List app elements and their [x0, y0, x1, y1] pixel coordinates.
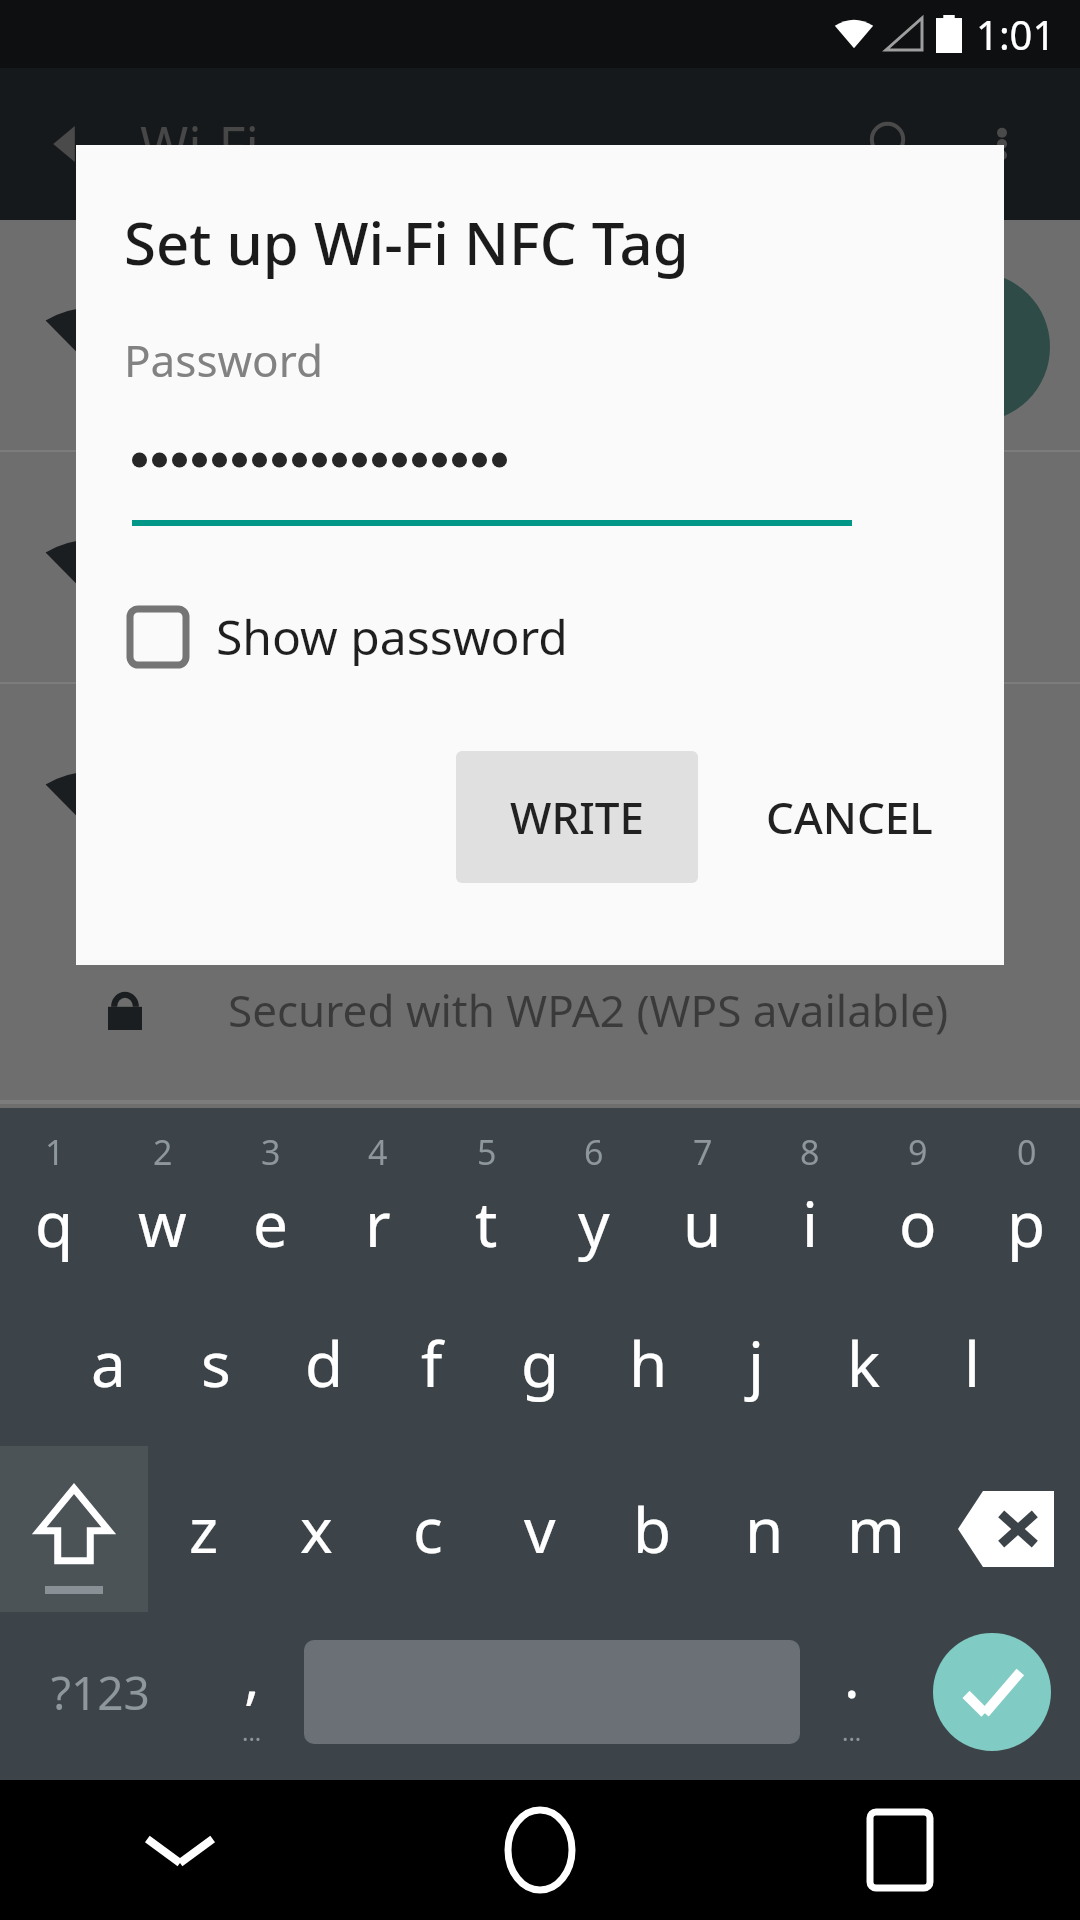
button[interactable]: x	[260, 1446, 372, 1612]
button[interactable]: Back	[40, 114, 100, 174]
staticText: o	[899, 1181, 937, 1265]
button[interactable]: Recents	[720, 1780, 1080, 1920]
button[interactable]: c	[372, 1446, 484, 1612]
staticText: 2	[153, 1129, 173, 1175]
button[interactable]: h	[594, 1280, 702, 1446]
button[interactable]: ,	[200, 1612, 304, 1772]
staticText: k	[847, 1321, 881, 1405]
staticText: 1:01	[976, 7, 1056, 61]
staticText: 8	[800, 1129, 820, 1175]
staticText: ,	[244, 1636, 260, 1715]
staticText: 5	[477, 1129, 497, 1175]
button[interactable]: WRITE	[456, 751, 698, 883]
staticText: Secured with WPA2 (WPS available)	[228, 980, 949, 1040]
staticText: q	[35, 1181, 74, 1265]
staticText: f	[421, 1321, 443, 1405]
button[interactable]: 3	[216, 1114, 324, 1280]
button[interactable]: d	[270, 1280, 378, 1446]
button[interactable]: 5	[432, 1114, 540, 1280]
staticText: v	[524, 1487, 556, 1571]
staticText: CANCEL	[766, 787, 933, 847]
button[interactable]: g	[486, 1280, 594, 1446]
staticText: ?123	[51, 1661, 150, 1724]
button[interactable]: m	[820, 1446, 932, 1612]
button[interactable]: b	[596, 1446, 708, 1612]
staticText: ...	[842, 1715, 862, 1748]
staticText: c	[413, 1487, 443, 1571]
staticText: a	[91, 1321, 126, 1405]
button[interactable]: 6	[540, 1114, 648, 1280]
staticText: t	[475, 1181, 498, 1265]
staticText: 3	[261, 1129, 281, 1175]
staticText: 6	[584, 1129, 604, 1175]
button[interactable]: f	[378, 1280, 486, 1446]
staticText: e	[253, 1181, 288, 1265]
staticText: n	[745, 1487, 784, 1571]
staticText: WRITE	[510, 787, 645, 847]
button[interactable]: ?123	[0, 1612, 200, 1772]
button[interactable]: l	[918, 1280, 1026, 1446]
staticText: .	[844, 1636, 860, 1715]
button[interactable]: 1	[0, 1114, 108, 1280]
staticText: y	[578, 1181, 610, 1265]
staticText: z	[189, 1487, 219, 1571]
button[interactable]: 4	[324, 1114, 432, 1280]
staticText: h	[629, 1321, 668, 1405]
button[interactable]: k	[810, 1280, 918, 1446]
button[interactable]: 2	[108, 1114, 216, 1280]
button[interactable]: 9	[864, 1114, 972, 1280]
staticText: 4	[368, 1129, 388, 1175]
button[interactable]: a	[54, 1280, 162, 1446]
staticText: 7	[693, 1129, 713, 1175]
staticText: u	[683, 1181, 722, 1265]
button[interactable]: .	[800, 1612, 904, 1772]
staticText: Set up Wi-Fi NFC Tag	[124, 203, 689, 282]
button[interactable]: 0	[972, 1114, 1080, 1280]
staticText: ...	[242, 1715, 262, 1748]
staticText: m	[847, 1487, 905, 1571]
staticText: g	[521, 1321, 560, 1405]
staticText: x	[300, 1487, 333, 1571]
button[interactable]: Hide keyboard	[0, 1780, 360, 1920]
staticText: l	[964, 1321, 980, 1405]
staticText: w	[138, 1181, 187, 1265]
button[interactable]: Home	[360, 1780, 720, 1920]
button[interactable]: z	[148, 1446, 260, 1612]
staticText: j	[748, 1321, 764, 1405]
staticText: 1	[45, 1129, 65, 1175]
button[interactable]: Show password	[126, 604, 568, 669]
staticText: p	[1007, 1181, 1046, 1265]
button[interactable]: CANCEL	[734, 751, 964, 883]
staticText: Password	[124, 330, 324, 390]
staticText: 9	[908, 1129, 928, 1175]
button[interactable]: 7	[648, 1114, 756, 1280]
staticText: 0	[1017, 1129, 1037, 1175]
button[interactable]: Backspace	[932, 1446, 1080, 1612]
staticText: i	[802, 1181, 818, 1265]
button[interactable]: 8	[756, 1114, 864, 1280]
button[interactable]: v	[484, 1446, 596, 1612]
button[interactable]: More options	[974, 116, 1030, 172]
button[interactable]: Shift	[0, 1446, 148, 1612]
button[interactable]: s	[162, 1280, 270, 1446]
button[interactable]: Enter	[904, 1612, 1080, 1772]
staticText: s	[201, 1321, 231, 1405]
staticText: r	[365, 1181, 391, 1265]
staticText: Show password	[216, 604, 568, 669]
staticText: d	[305, 1321, 344, 1405]
button[interactable]: Search	[864, 116, 920, 172]
button[interactable]: j	[702, 1280, 810, 1446]
staticText: Wi-Fi	[140, 109, 259, 180]
staticText: b	[633, 1487, 672, 1571]
button[interactable]: n	[708, 1446, 820, 1612]
